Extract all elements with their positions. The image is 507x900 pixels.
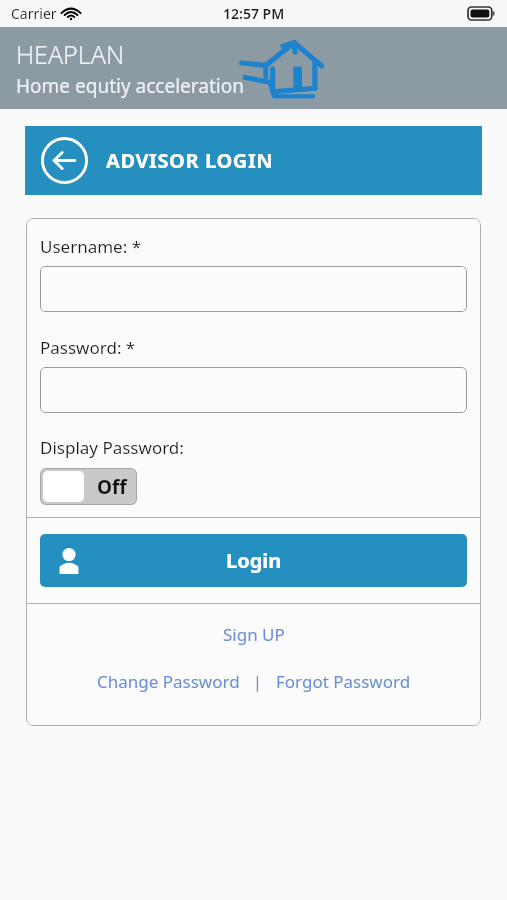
staticText: Display Password: xyxy=(40,436,184,459)
staticText: Forgot Password xyxy=(276,670,411,693)
button[interactable]: Back xyxy=(41,137,88,184)
button[interactable]: Display Password toggle, Off xyxy=(40,468,137,505)
button[interactable] xyxy=(40,367,467,413)
staticText: ADVISOR LOGIN xyxy=(106,147,274,174)
button[interactable]: Back xyxy=(25,126,482,195)
staticText: HEAPLAN xyxy=(16,37,125,71)
staticText: Password: * xyxy=(40,336,136,359)
button[interactable] xyxy=(40,266,467,312)
staticText: Carrier xyxy=(11,4,57,23)
staticText: Home equtiy acceleration xyxy=(16,73,244,99)
button[interactable]: Forgot Password xyxy=(272,667,415,696)
button[interactable]: Login xyxy=(40,534,467,587)
staticText: | xyxy=(244,670,272,693)
button[interactable]: Change Password xyxy=(93,667,244,696)
staticText: Username: * xyxy=(40,235,142,258)
staticText: Sign UP xyxy=(223,623,285,646)
staticText: Change Password xyxy=(97,670,240,693)
button[interactable]: Sign UP xyxy=(213,620,295,649)
staticText: 12:57 PM xyxy=(223,4,285,23)
staticText: Off xyxy=(97,474,127,500)
staticText: Login xyxy=(226,547,282,574)
